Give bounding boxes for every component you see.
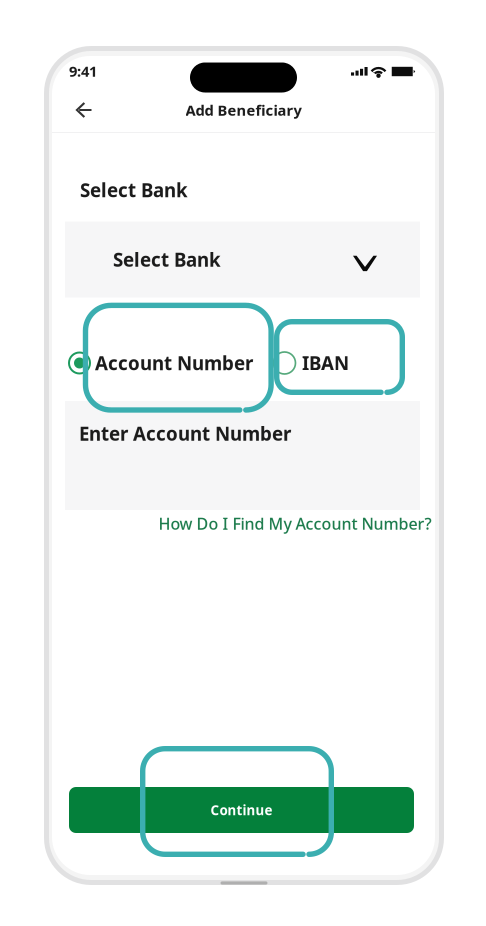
staticText: Add Beneficiary [185,100,301,120]
staticText: How Do I Find My Account Number? [158,513,431,534]
button[interactable]: IBAN [273,345,353,381]
staticText: Account Number [95,351,253,375]
staticText: Select Bank [80,178,188,202]
button[interactable]: How Do I Find My Account Number? [158,513,431,533]
staticText: Enter Account Number [79,421,291,446]
staticText: 9:41 [69,61,97,81]
staticText: Continue [210,801,272,819]
button[interactable]: Back [62,92,104,128]
button[interactable]: Continue [69,787,414,833]
button[interactable]: Account Number [68,345,256,381]
staticText: Select Bank [113,247,221,272]
button[interactable]: Select Bank [65,221,420,297]
staticText: IBAN [302,351,349,375]
